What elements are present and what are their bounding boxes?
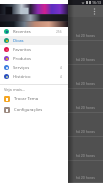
- button[interactable]: Sea PC Windows: [0, 137, 103, 161]
- staticText: há 20 horas: [0, 153, 95, 158]
- button[interactable]: Trocar Tema: [0, 93, 68, 104]
- staticText: Serviços: [13, 65, 30, 71]
- staticText: Veja mais...: [4, 87, 26, 92]
- button[interactable]: More options: [90, 7, 99, 16]
- button[interactable]: Recentes: [0, 27, 68, 36]
- staticText: para Ver Apenas a: [3, 92, 55, 100]
- staticText: há 20 horas: [0, 33, 95, 38]
- staticText: Configurações: [14, 107, 43, 113]
- staticText: Trocar Tema: [14, 96, 39, 102]
- staticText: há 20 horas: [0, 105, 95, 110]
- staticText: há 20 horas: [0, 81, 95, 86]
- staticText: App com Bases: [3, 68, 47, 76]
- button[interactable]: Favoritos: [0, 45, 68, 54]
- button[interactable]: Produtos: [0, 54, 68, 63]
- staticText: Favoritos: [13, 47, 32, 53]
- staticText: Produtos: [13, 56, 31, 62]
- staticText: há 20 horas: [0, 129, 95, 134]
- staticText: 16:13: [92, 0, 101, 5]
- staticText: Dicas: [13, 38, 24, 44]
- staticText: 256: [56, 30, 62, 34]
- staticText: Um Guia Passo a: [3, 20, 51, 28]
- staticText: Ify Downloader: [3, 44, 47, 52]
- button[interactable]: Configurações: [0, 104, 68, 115]
- button[interactable]: Ify Downloader: [0, 41, 103, 65]
- staticText: Histórico: [13, 74, 31, 80]
- staticText: há 20 horas: [0, 57, 95, 62]
- staticText: 4: [60, 66, 62, 70]
- button[interactable]: Um Guia Passo a: [0, 17, 103, 41]
- button[interactable]: Histórico: [0, 72, 68, 81]
- button[interactable]: Confira Galaxia: [0, 161, 103, 183]
- staticText: há 20 horas: [0, 175, 95, 180]
- button[interactable]: Dicas: [0, 36, 68, 45]
- button[interactable]: App com Bases: [0, 65, 103, 89]
- button[interactable]: ança no WhatsApp: [0, 113, 103, 137]
- button[interactable]: Serviços: [0, 63, 68, 72]
- button[interactable]: para Ver Apenas a: [0, 89, 103, 113]
- staticText: Recentes: [13, 29, 31, 35]
- staticText: 4: [60, 75, 62, 79]
